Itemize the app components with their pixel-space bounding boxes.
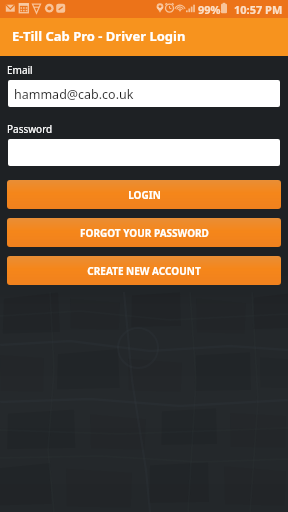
staticText: 99%: [198, 2, 221, 17]
button[interactable]: CREATE NEW ACCOUNT: [7, 256, 281, 285]
button[interactable]: [8, 139, 280, 166]
button[interactable]: LOGIN: [7, 180, 281, 209]
button[interactable]: hammad@cab.co.uk: [8, 80, 280, 107]
staticText: hammad@cab.co.uk: [14, 86, 134, 103]
staticText: Password: [7, 122, 53, 136]
staticText: FORGOT YOUR PASSWORD: [80, 226, 209, 240]
staticText: Email: [7, 63, 33, 77]
staticText: LOGIN: [128, 188, 161, 202]
button[interactable]: FORGOT YOUR PASSWORD: [7, 218, 281, 247]
staticText: CREATE NEW ACCOUNT: [87, 264, 201, 278]
staticText: 10:57 PM: [234, 2, 283, 17]
button[interactable]: E-Till Cab Pro - Driver Login: [0, 18, 288, 56]
staticText: E-Till Cab Pro - Driver Login: [12, 27, 186, 45]
